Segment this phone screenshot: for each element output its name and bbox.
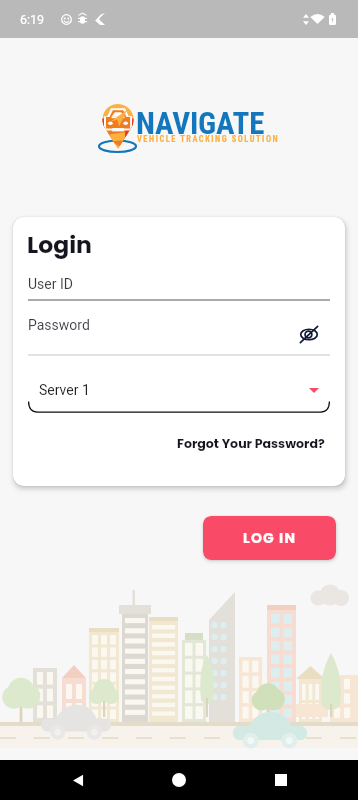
staticText: Forgot Your Password? bbox=[177, 435, 325, 453]
button[interactable]: Forgot Your Password? bbox=[175, 432, 327, 456]
button[interactable]: Show password bbox=[296, 321, 322, 347]
staticText: LOG IN bbox=[243, 528, 297, 548]
button[interactable]: Recents bbox=[257, 760, 305, 800]
staticText: Server 1 bbox=[39, 382, 90, 398]
button[interactable]: Server 1 bbox=[28, 373, 330, 413]
staticText: NAVIGATE bbox=[136, 105, 265, 141]
staticText: 6:19 bbox=[20, 12, 45, 27]
staticText: User ID bbox=[28, 276, 73, 292]
button[interactable]: User ID bbox=[28, 269, 330, 301]
staticText: VEHICLE TRACKING SOLUTION bbox=[137, 134, 280, 144]
staticText: Password bbox=[28, 317, 90, 333]
staticText: Login bbox=[27, 228, 92, 261]
button[interactable]: Home bbox=[155, 760, 203, 800]
button[interactable]: LOG IN bbox=[203, 516, 336, 560]
button[interactable]: Back bbox=[54, 760, 102, 800]
